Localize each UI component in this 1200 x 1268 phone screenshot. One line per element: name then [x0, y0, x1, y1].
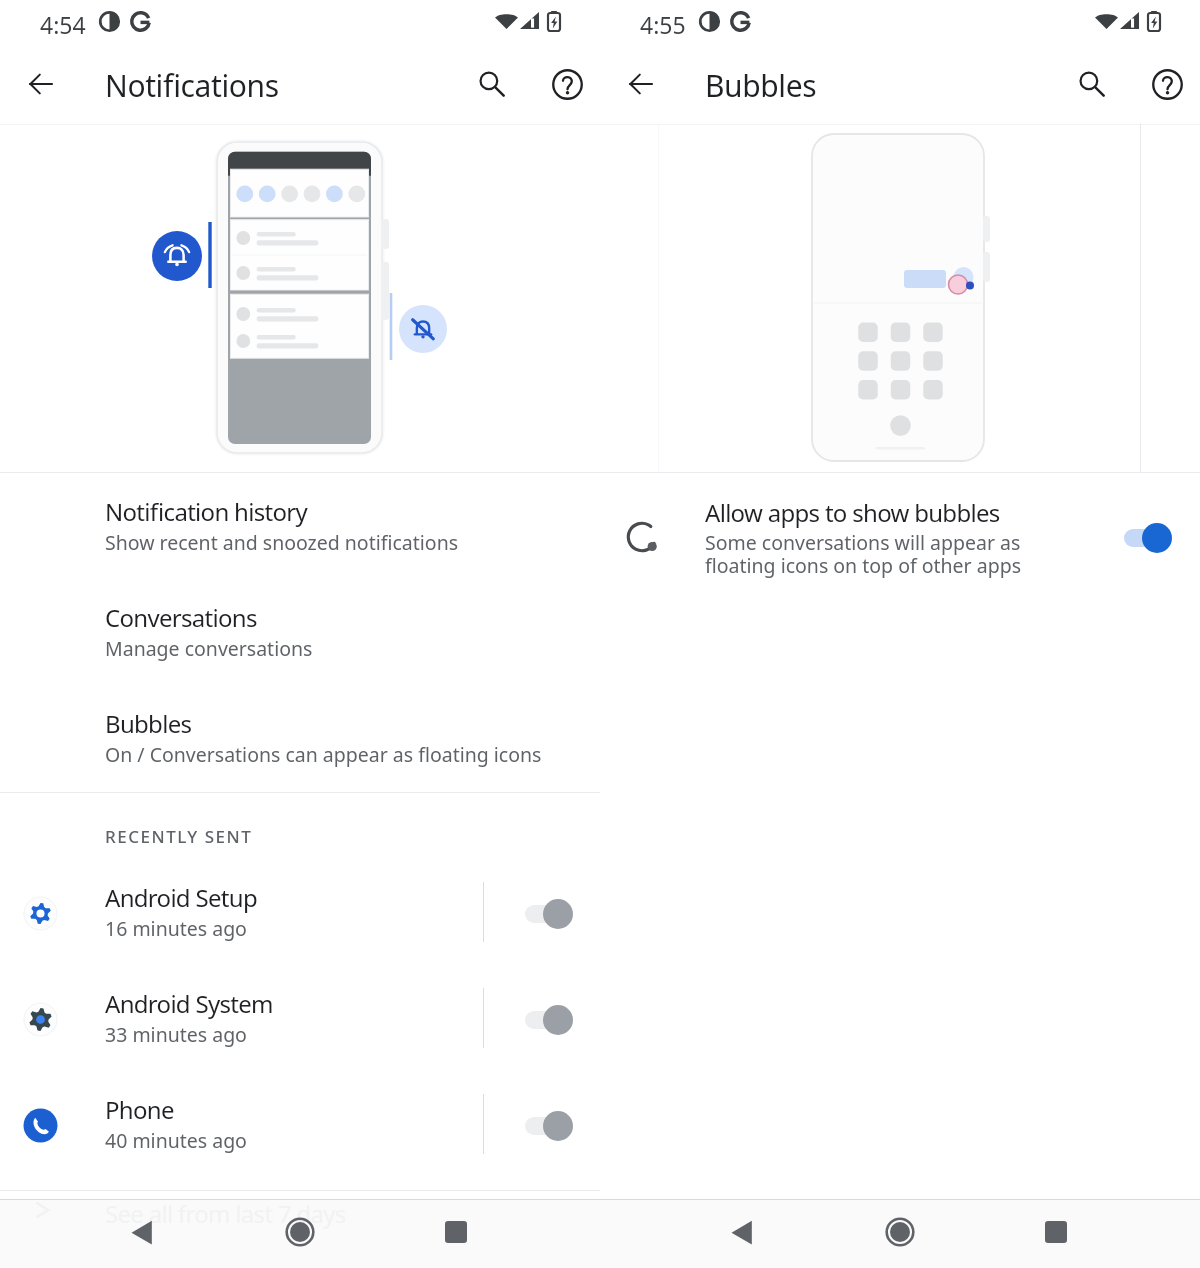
button[interactable]: Back: [11, 54, 71, 114]
button[interactable]: Recents: [1022, 1199, 1090, 1268]
staticText: Android Setup: [105, 881, 257, 914]
button[interactable]: Bubbles: [0, 707, 600, 779]
button[interactable]: Conversations: [0, 601, 600, 673]
button[interactable]: See all from last 7 days: [0, 1196, 600, 1246]
staticText: See all from last 7 days: [105, 1197, 346, 1230]
staticText: 40 minutes ago: [105, 1127, 247, 1154]
button[interactable]: Back: [710, 1199, 778, 1268]
staticText: 4:55: [640, 9, 686, 40]
button[interactable]: Allow apps to show bubbles toggle: [1092, 495, 1200, 581]
button[interactable]: Android System: [0, 978, 600, 1062]
staticText: RECENTLY SENT: [105, 825, 253, 848]
staticText: Android System: [105, 987, 273, 1020]
staticText: Some conversations will appear as floati…: [705, 529, 1021, 579]
button[interactable]: Android Setup: [0, 872, 600, 956]
button[interactable]: Home: [866, 1199, 934, 1268]
staticText: 16 minutes ago: [105, 915, 247, 942]
staticText: Allow apps to show bubbles: [705, 496, 1000, 529]
staticText: Notifications: [105, 65, 279, 106]
button[interactable]: Toggle Android Setup: [492, 872, 600, 956]
button[interactable]: Search: [462, 54, 522, 114]
staticText: Manage conversations: [105, 635, 313, 662]
staticText: Notification history: [105, 495, 308, 528]
staticText: 4:54: [40, 9, 86, 40]
staticText: Conversations: [105, 601, 257, 634]
button[interactable]: Notification history: [0, 495, 600, 567]
button[interactable]: Back: [110, 1199, 178, 1268]
staticText: Bubbles: [705, 65, 817, 106]
button[interactable]: Help: [537, 54, 597, 114]
staticText: On / Conversations can appear as floatin…: [105, 741, 542, 768]
button[interactable]: Search: [1062, 54, 1122, 114]
button[interactable]: Recents: [422, 1199, 490, 1268]
staticText: Show recent and snoozed notifications: [105, 529, 459, 556]
button[interactable]: Toggle Phone: [492, 1084, 600, 1168]
staticText: Bubbles: [105, 707, 192, 740]
button[interactable]: Back: [611, 54, 671, 114]
staticText: Phone: [105, 1093, 174, 1126]
button[interactable]: Phone: [0, 1084, 600, 1168]
button[interactable]: Toggle Android System: [492, 978, 600, 1062]
staticText: 33 minutes ago: [105, 1021, 247, 1048]
button[interactable]: Help: [1137, 54, 1197, 114]
button[interactable]: Allow apps to show bubbles: [600, 495, 1200, 591]
button[interactable]: Home: [266, 1199, 334, 1268]
